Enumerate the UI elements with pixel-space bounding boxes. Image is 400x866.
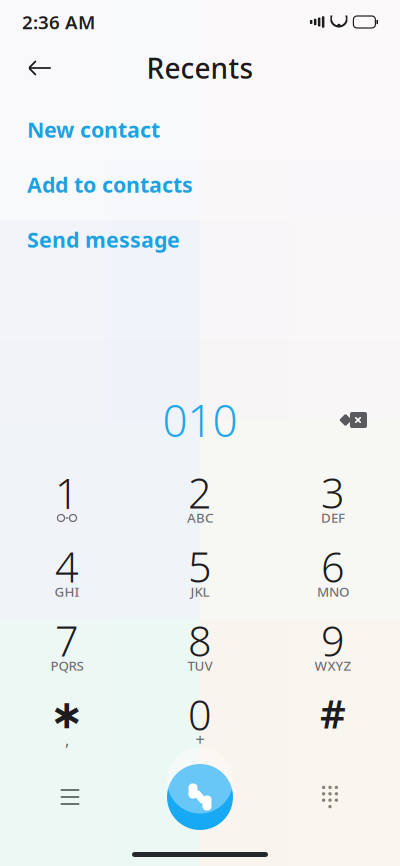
button[interactable]: 9 (266, 610, 399, 684)
staticText: ∗ (50, 692, 84, 737)
staticText: 1 (55, 466, 79, 520)
button[interactable]: Send message (0, 212, 400, 267)
staticText: 010 (162, 391, 237, 449)
button[interactable]: Back (18, 46, 62, 90)
staticText: GHI (54, 583, 79, 600)
staticText: Add to contacts (27, 170, 193, 199)
staticText: JKL (190, 583, 209, 600)
staticText: 5 (188, 539, 212, 594)
button[interactable]: Keypad (295, 762, 365, 832)
staticText: WXYZ (314, 657, 351, 674)
staticText: Recents (146, 49, 253, 87)
staticText: PQRS (50, 657, 83, 674)
staticText: TUV (187, 657, 212, 674)
staticText: 2:36 AM (22, 10, 95, 34)
staticText: + (195, 729, 204, 750)
button[interactable]: 6 (266, 536, 399, 610)
button[interactable]: 7 (0, 610, 133, 684)
button[interactable]: 3 (266, 462, 399, 536)
button[interactable]: 5 (133, 536, 266, 610)
button[interactable]: Call log options (35, 762, 105, 832)
staticText: 8 (188, 613, 212, 668)
button[interactable]: 2 (133, 462, 266, 536)
staticText: 6 (321, 539, 345, 594)
button[interactable]: 0 (133, 684, 266, 758)
button[interactable]: Delete (326, 398, 382, 442)
button[interactable]: Call (167, 764, 233, 830)
staticText: 2 (188, 465, 212, 520)
staticText: 0 (188, 687, 212, 742)
staticText: Send message (27, 225, 180, 254)
staticText: 3 (321, 465, 345, 520)
button[interactable]: 8 (133, 610, 266, 684)
staticText: MNO (317, 583, 349, 600)
staticText: New contact (27, 115, 160, 144)
button[interactable]: Add to contacts (0, 157, 400, 212)
staticText: , (65, 729, 69, 750)
staticText: # (320, 686, 346, 739)
staticText: DEF (321, 509, 345, 526)
staticText: 9 (321, 613, 345, 668)
button[interactable]: # (266, 684, 399, 758)
button[interactable]: 1 (0, 462, 133, 536)
button[interactable]: ∗ (0, 684, 133, 758)
staticText: ABC (187, 509, 213, 526)
staticText: 7 (55, 613, 79, 668)
button[interactable]: New contact (0, 102, 400, 157)
button[interactable]: 4 (0, 536, 133, 610)
staticText: 4 (55, 539, 79, 594)
